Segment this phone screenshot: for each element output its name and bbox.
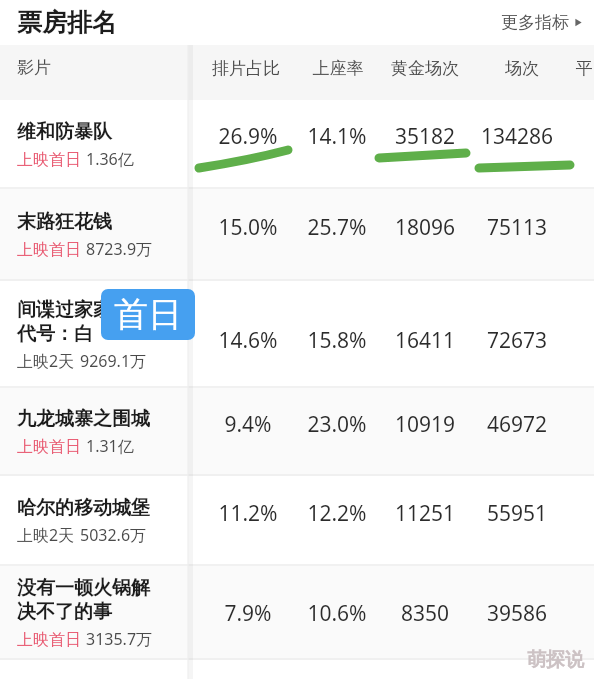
staticText: 23.0% bbox=[290, 410, 384, 439]
staticText: 39586 bbox=[470, 599, 564, 628]
staticText: 46972 bbox=[470, 410, 564, 439]
staticText: 上映首日 bbox=[17, 240, 81, 260]
staticText: 排片占比 bbox=[196, 58, 296, 79]
staticText: 首日 bbox=[114, 293, 182, 336]
staticText: 1.36亿 bbox=[86, 148, 134, 170]
staticText: 12.2% bbox=[290, 499, 384, 528]
staticText: 上映首日 bbox=[17, 150, 81, 170]
staticText: 18096 bbox=[380, 213, 470, 242]
button[interactable]: 没有一顿火锅解 bbox=[0, 566, 594, 660]
staticText: 15.8% bbox=[290, 326, 384, 355]
staticText: 8723.9万 bbox=[86, 238, 153, 260]
button[interactable]: 间谍过家家 bbox=[0, 281, 594, 388]
staticText: 哈尔的移动城堡 bbox=[17, 496, 150, 520]
staticText: 上座率 bbox=[305, 58, 371, 79]
staticText: 25.7% bbox=[290, 213, 384, 242]
staticText: 72673 bbox=[470, 326, 564, 355]
staticText: 35182 bbox=[380, 122, 470, 151]
staticText: 维和防暴队 bbox=[17, 120, 112, 144]
staticText: 26.9% bbox=[198, 122, 298, 151]
button[interactable]: 更多指标 bbox=[501, 12, 583, 33]
button[interactable]: 维和防暴队 bbox=[0, 100, 594, 189]
staticText: 代号：白 bbox=[17, 322, 93, 346]
staticText: 9269.1万 bbox=[80, 350, 147, 372]
button[interactable]: 末路狂花钱 bbox=[0, 189, 594, 281]
staticText: 8350 bbox=[380, 599, 470, 628]
staticText: 15.0% bbox=[198, 213, 298, 242]
staticText: 间谍过家家 bbox=[17, 298, 112, 322]
staticText: 55951 bbox=[470, 499, 564, 528]
staticText: 16411 bbox=[380, 326, 470, 355]
staticText: 14.6% bbox=[198, 326, 298, 355]
staticText: 1.31亿 bbox=[86, 435, 134, 457]
staticText: 末路狂花钱 bbox=[17, 210, 112, 234]
staticText: 10.6% bbox=[290, 599, 384, 628]
staticText: 11251 bbox=[380, 499, 470, 528]
staticText: 上映2天 bbox=[17, 350, 75, 372]
staticText: 7.9% bbox=[198, 599, 298, 628]
button[interactable]: 哈尔的移动城堡 bbox=[0, 476, 594, 566]
staticText: 黄金场次 bbox=[381, 58, 469, 79]
staticText: 平 bbox=[573, 58, 594, 79]
staticText: 上映首日 bbox=[17, 437, 81, 457]
staticText: 萌探说 bbox=[527, 648, 584, 672]
staticText: 决不了的事 bbox=[17, 600, 112, 624]
staticText: 场次 bbox=[497, 58, 547, 79]
staticText: 134286 bbox=[470, 122, 564, 151]
staticText: 10919 bbox=[380, 410, 470, 439]
staticText: 75113 bbox=[470, 213, 564, 242]
staticText: 九龙城寨之围城 bbox=[17, 407, 150, 431]
staticText: 上映2天 bbox=[17, 524, 75, 546]
staticText: 影片 bbox=[17, 57, 51, 78]
staticText: 没有一顿火锅解 bbox=[17, 576, 150, 600]
staticText: 5032.6万 bbox=[80, 524, 147, 546]
staticText: 3135.7万 bbox=[86, 628, 153, 650]
staticText: 14.1% bbox=[290, 122, 384, 151]
staticText: 票房排名 bbox=[17, 7, 117, 38]
staticText: 9.4% bbox=[198, 410, 298, 439]
staticText: 11.2% bbox=[198, 499, 298, 528]
button[interactable]: 九龙城寨之围城 bbox=[0, 388, 594, 476]
staticText: 上映首日 bbox=[17, 630, 81, 650]
staticText: 更多指标 bbox=[501, 12, 569, 33]
button[interactable]: 首日 bbox=[101, 289, 195, 340]
